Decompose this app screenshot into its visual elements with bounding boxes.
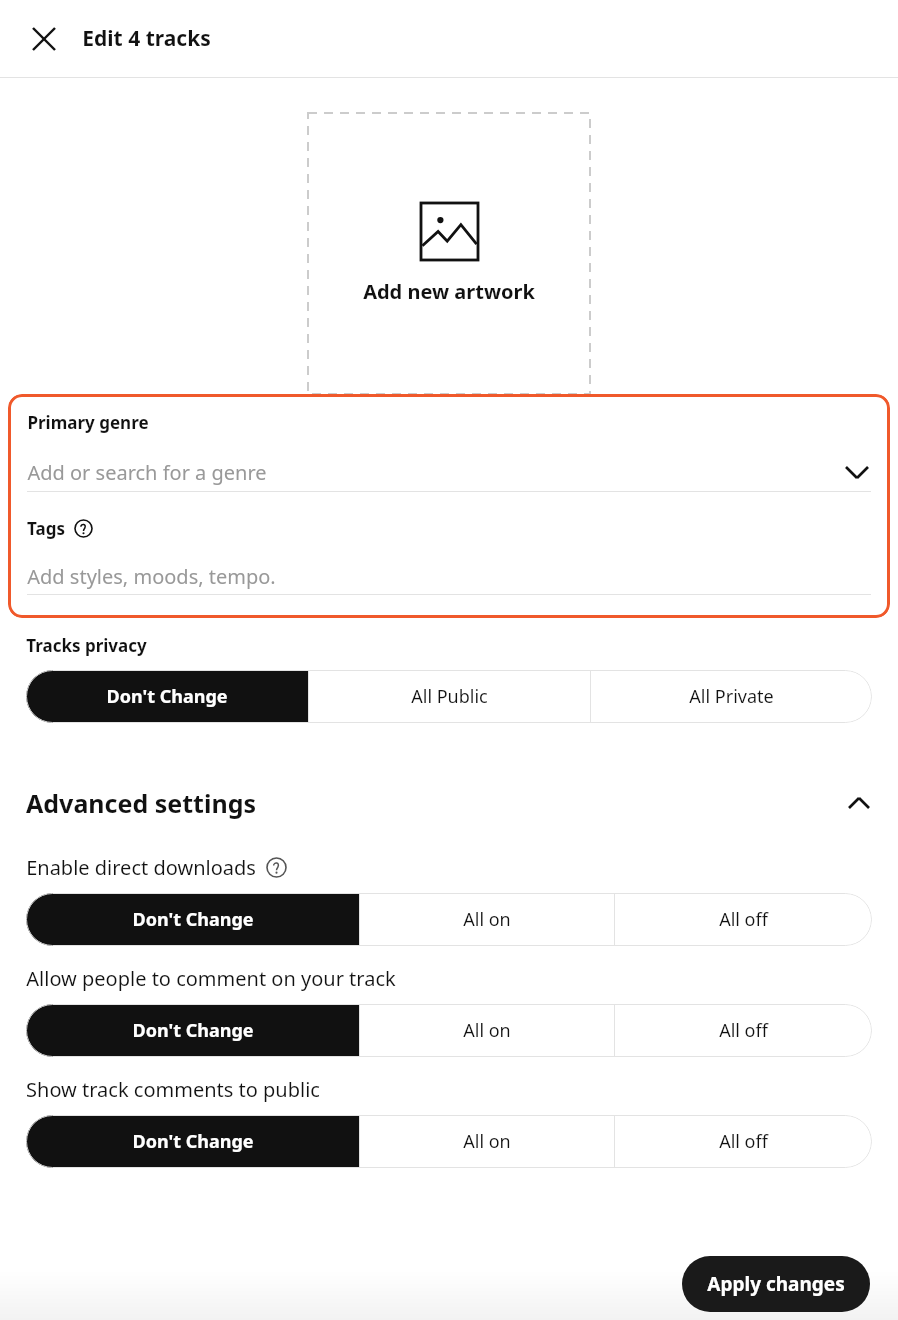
staticText: Don't Change [132,1129,254,1154]
staticText: Tracks privacy [26,634,147,657]
staticText: Don't Change [106,684,228,709]
staticText: Add new artwork [363,278,535,305]
button[interactable]: Close [22,17,66,61]
button[interactable]: Don't Change [26,893,359,946]
staticText: All Public [411,684,488,709]
staticText: Show track comments to public [26,1076,320,1103]
staticText: Add or search for a genre [27,459,267,486]
button[interactable]: Don't Change [26,670,308,723]
button[interactable]: Advanced settings [26,780,872,826]
button[interactable]: All off [614,893,872,946]
button[interactable]: Apply changes [682,1256,870,1312]
staticText: Edit 4 tracks [82,24,211,53]
staticText: All on [463,1129,511,1154]
staticText: Tags [27,517,65,540]
button[interactable]: Add styles, moods, tempo. [27,558,871,594]
staticText: Don't Change [132,907,254,932]
staticText: Allow people to comment on your track [26,965,396,992]
button[interactable]: All on [359,1115,614,1168]
button[interactable]: All off [614,1004,872,1057]
staticText: All Private [689,684,774,709]
button[interactable]: All on [359,1004,614,1057]
staticText: All on [463,1018,511,1043]
staticText: Primary genre [27,411,149,434]
button[interactable]: All Public [308,670,590,723]
staticText: Don't Change [132,1018,254,1043]
button[interactable]: Add or search for a genre [27,453,871,491]
button[interactable]: Add new artwork [308,113,590,394]
staticText: All off [719,907,768,932]
button[interactable]: All Private [590,670,872,723]
button[interactable]: Don't Change [26,1004,359,1057]
button[interactable]: All off [614,1115,872,1168]
staticText: Apply changes [707,1271,845,1297]
button[interactable]: Don't Change [26,1115,359,1168]
staticText: All off [719,1018,768,1043]
staticText: Add styles, moods, tempo. [27,563,276,590]
button[interactable]: All on [359,893,614,946]
staticText: All off [719,1129,768,1154]
staticText: Enable direct downloads [26,854,256,881]
staticText: All on [463,907,511,932]
staticText: Advanced settings [26,786,256,820]
